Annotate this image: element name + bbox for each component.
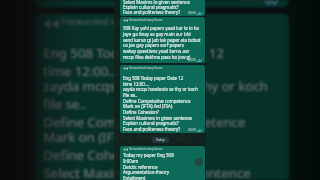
staticText: send karun gi jab tak paper ata bohat (123, 37, 201, 43)
button[interactable]: Scroll to bottom (195, 158, 203, 166)
staticText: 08:58 (188, 128, 196, 132)
staticText: Explain cultural pragmatic? (123, 4, 179, 10)
staticText: time 12:00.... (123, 81, 150, 87)
staticText: 9:00am (123, 158, 139, 164)
staticText: Forwarded many times (129, 66, 163, 70)
staticText: Face and politeness theory? (123, 9, 181, 15)
staticText: Select Maximes in given sentence (123, 115, 193, 121)
staticText: time 12:00.... (43, 61, 124, 79)
staticText: os jan gay papers surf papers (123, 42, 184, 48)
staticText: Mark on (IFTA) Ard (FSA) (43, 127, 193, 145)
staticText: zayda mcqs handouts se thy or koch (43, 76, 268, 94)
staticText: Define Cohesion? (43, 145, 151, 163)
staticText: Forwarded many times (129, 147, 163, 151)
staticText: 08:58 (188, 58, 196, 62)
staticText: Define Competative competence (123, 98, 191, 104)
staticText: Face and politeness theory? (123, 126, 181, 132)
staticText: Entailment (123, 175, 146, 180)
staticText: jaye ga itnay as gay main aur bhi (123, 31, 191, 37)
staticText: Today my paper Eng 508 (123, 152, 174, 158)
staticText: mcqs files dekhna pass ho jow gi (123, 54, 191, 60)
staticText: Today (156, 138, 165, 142)
button[interactable] (120, 17, 205, 63)
staticText: zayda mcqs handouts se thy or koch (123, 86, 198, 92)
staticText: Eng 508 Today paper Date 12 (43, 43, 226, 61)
staticText: file se.. (123, 92, 138, 98)
staticText: Define Competative competence (43, 112, 247, 130)
staticText: 08:58 (238, 0, 262, 4)
staticText: 508 Kay yahi papers yaad kar le lo ho (123, 25, 200, 31)
staticText: Argumentation theory (123, 169, 170, 175)
staticText: file se.. (43, 94, 88, 112)
staticText: Mark on (IFTA) Ard (FSA) (123, 103, 173, 109)
button[interactable] (120, 65, 205, 133)
button[interactable] (120, 0, 205, 16)
staticText: 08:58 (188, 11, 196, 15)
staticText: Explain cultural pragmatic? (43, 178, 211, 180)
staticText: Forwarded many times (61, 16, 163, 28)
button[interactable]: Today (152, 137, 169, 143)
staticText: Eng 508 Today paper Date 12 (123, 75, 184, 81)
staticText: Deictic reference (123, 164, 158, 170)
staticText: Forwarded many times (129, 18, 163, 22)
button[interactable] (34, 0, 289, 7)
staticText: Select Maxims in given sentence (123, 0, 190, 5)
staticText: Select Maximes in given sentence (43, 163, 253, 180)
staticText: Explain cultural pragmatic? (123, 120, 179, 126)
staticText: wakay questions yaad karna aur (123, 48, 190, 54)
staticText: Define Cohesion? (123, 109, 159, 115)
button[interactable] (34, 13, 289, 180)
button[interactable] (120, 146, 205, 180)
